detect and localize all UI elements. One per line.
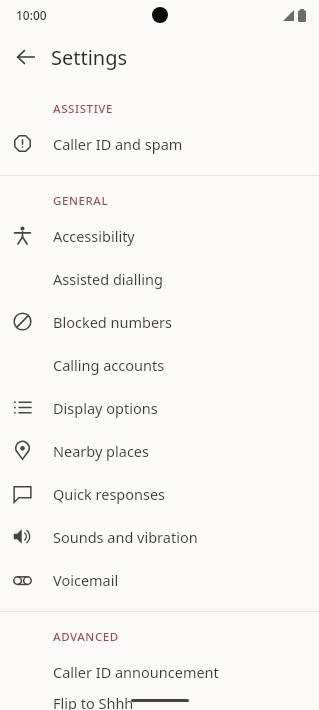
button[interactable]: Calling accounts <box>0 343 319 386</box>
staticText: Assisted dialling <box>53 269 163 289</box>
staticText: GENERAL <box>53 193 109 209</box>
button[interactable]: Caller ID and spam <box>0 122 319 165</box>
button[interactable]: Nearby places <box>0 429 319 472</box>
button[interactable]: Blocked numbers <box>0 300 319 343</box>
staticText: Quick responses <box>53 484 166 504</box>
button[interactable]: Voicemail <box>0 558 319 601</box>
staticText: 10:00 <box>16 7 47 23</box>
staticText: Blocked numbers <box>53 312 173 332</box>
staticText: Settings <box>51 44 128 71</box>
staticText: Flip to Shhh <box>53 693 134 710</box>
staticText: Calling accounts <box>53 355 165 375</box>
staticText: ASSISTIVE <box>53 101 113 117</box>
staticText: ADVANCED <box>53 629 119 645</box>
staticText: Voicemail <box>53 570 119 590</box>
staticText: Caller ID and spam <box>53 134 183 154</box>
staticText: Nearby places <box>53 441 149 461</box>
button[interactable]: Quick responses <box>0 472 319 515</box>
button[interactable]: Display options <box>0 386 319 429</box>
button[interactable]: Accessibility <box>0 214 319 257</box>
staticText: Caller ID announcement <box>53 662 219 682</box>
button[interactable]: Back <box>6 37 46 77</box>
button[interactable]: Flip to Shhh <box>0 693 319 710</box>
button[interactable]: Caller ID announcement <box>0 650 319 693</box>
staticText: Display options <box>53 398 158 418</box>
staticText: Sounds and vibration <box>53 527 198 547</box>
button[interactable]: Assisted dialling <box>0 257 319 300</box>
staticText: Accessibility <box>53 226 135 246</box>
button[interactable]: Sounds and vibration <box>0 515 319 558</box>
